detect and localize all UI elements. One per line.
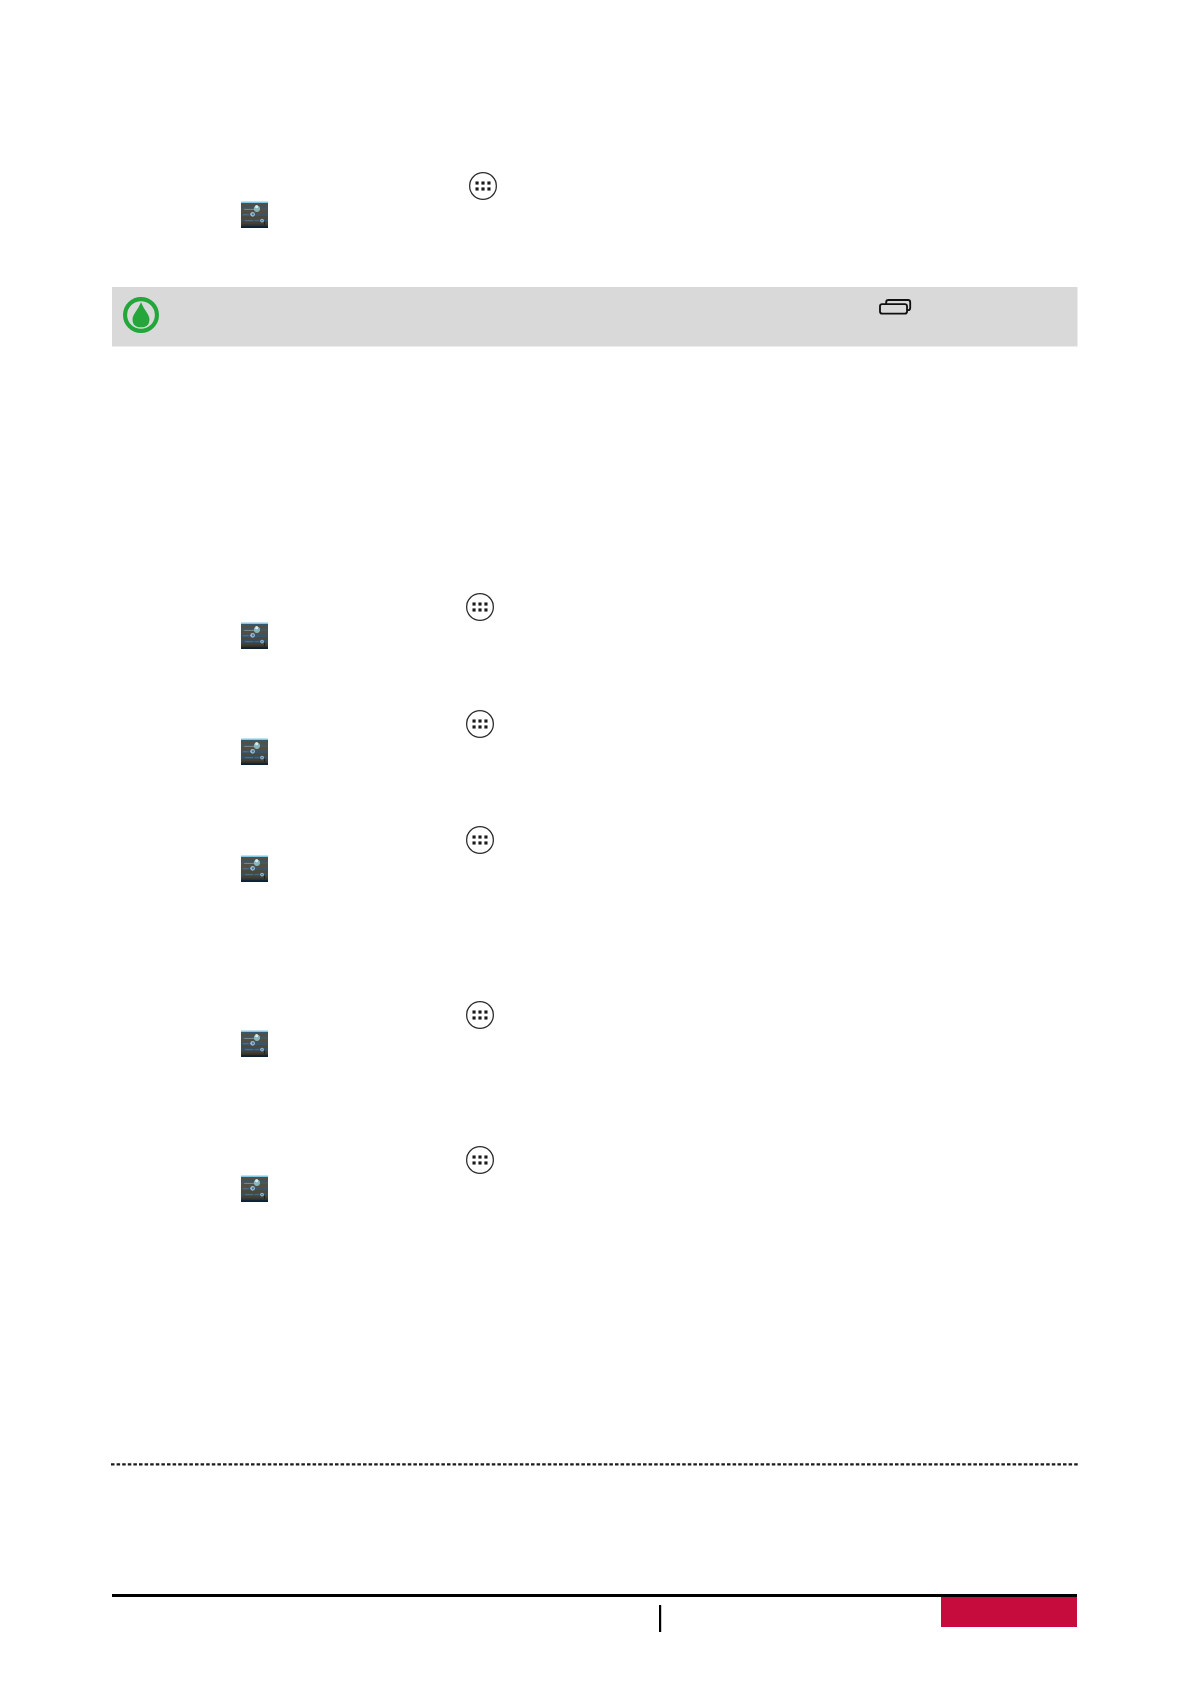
button[interactable]: Tip — [123, 297, 159, 333]
button[interactable]: All apps — [466, 593, 494, 621]
button[interactable]: All apps — [466, 710, 494, 738]
button[interactable]: Open Settings screenshot — [241, 201, 268, 228]
button[interactable]: Open Settings screenshot — [241, 738, 268, 765]
button[interactable]: All apps — [466, 826, 494, 854]
button[interactable]: Open Settings screenshot — [241, 622, 268, 649]
button[interactable]: Recent apps — [880, 300, 910, 314]
button[interactable]: Open Settings screenshot — [241, 1030, 268, 1057]
button[interactable]: All apps — [466, 1001, 494, 1029]
button[interactable]: Open Settings screenshot — [241, 855, 268, 882]
button[interactable]: All apps — [466, 1146, 494, 1174]
button[interactable]: All apps — [469, 172, 497, 200]
button[interactable]: Open Settings screenshot — [241, 1175, 268, 1202]
